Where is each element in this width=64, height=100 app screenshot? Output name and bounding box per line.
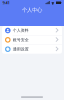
button[interactable]: 个人资料 <box>2 26 62 35</box>
staticText: 通用设置 <box>13 47 29 52</box>
button[interactable]: 账号安全 <box>2 35 62 44</box>
button[interactable]: 通用设置 <box>2 45 62 54</box>
staticText: 个人资料 <box>13 28 29 33</box>
staticText: 9:41 <box>3 0 10 5</box>
staticText: 个人中心 <box>22 7 42 13</box>
staticText: 账号安全 <box>13 37 29 42</box>
